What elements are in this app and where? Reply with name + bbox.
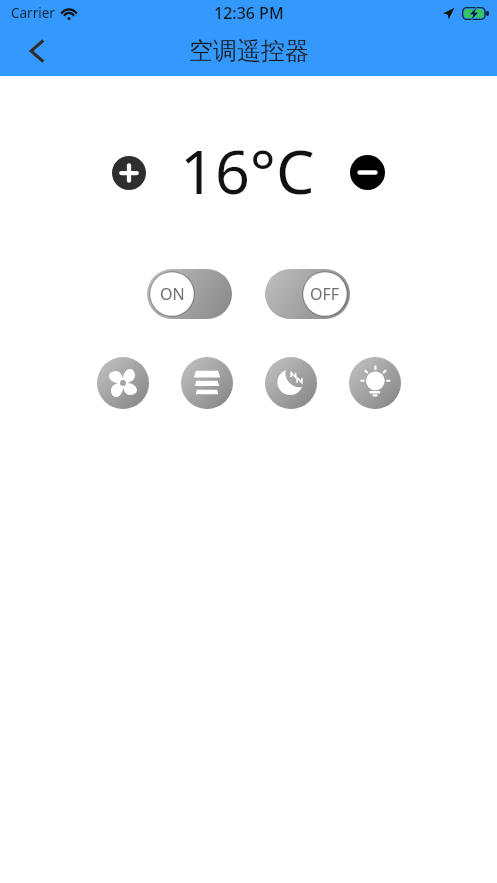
button[interactable]: OFF	[265, 269, 350, 319]
staticText: OFF	[310, 283, 340, 305]
button[interactable]: Decrease temperature	[350, 155, 385, 190]
staticText: Carrier	[11, 4, 55, 22]
button[interactable]: Back	[12, 27, 60, 75]
button[interactable]: Wind speed	[181, 357, 233, 409]
button[interactable]: Sleep mode	[265, 357, 317, 409]
staticText: 12:36 PM	[214, 2, 284, 24]
staticText: 16°C	[180, 129, 315, 212]
staticText: 空调遥控器	[189, 36, 309, 66]
button[interactable]: Light	[349, 357, 401, 409]
staticText: ON	[160, 283, 185, 305]
button[interactable]: Increase temperature	[112, 156, 146, 190]
button[interactable]: Fan	[97, 357, 149, 409]
button[interactable]: ON	[147, 269, 232, 319]
